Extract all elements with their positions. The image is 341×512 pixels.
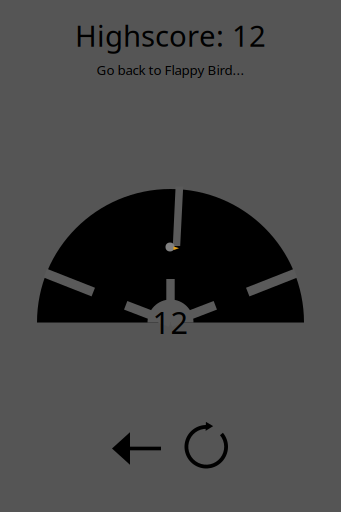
staticText: Highscore: 12 [75,16,266,55]
button[interactable]: Back [112,429,161,467]
staticText: 12 [152,302,188,342]
staticText: Go back to Flappy Bird... [96,61,244,79]
button[interactable]: Restart [184,425,228,468]
